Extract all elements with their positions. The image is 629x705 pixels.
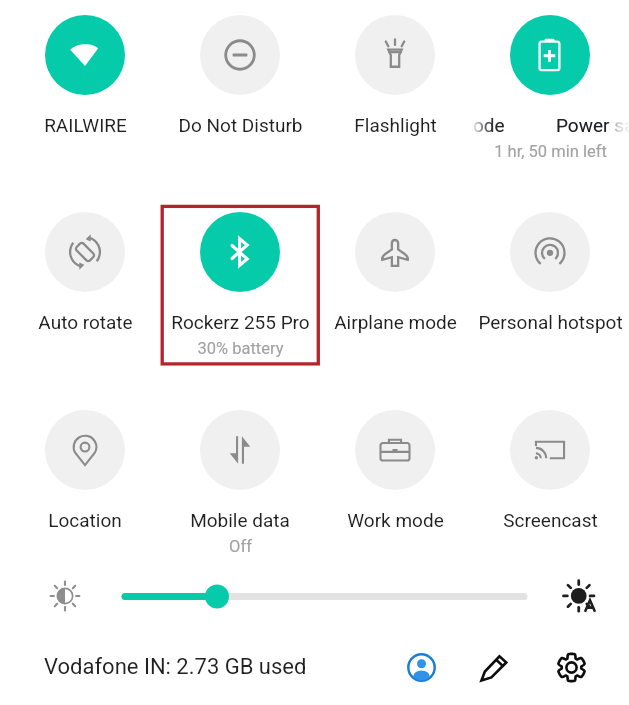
button[interactable] — [200, 410, 280, 490]
button[interactable]: Brightness — [44, 575, 86, 617]
staticText: Rockerz 255 Pro — [171, 311, 310, 333]
button[interactable] — [510, 410, 590, 490]
staticText: Work mode — [347, 509, 444, 531]
button[interactable] — [200, 212, 280, 292]
button[interactable] — [45, 212, 125, 292]
button[interactable]: Settings — [551, 647, 591, 687]
button[interactable]: Brightness level — [119, 583, 531, 611]
button[interactable] — [355, 15, 435, 95]
button[interactable] — [510, 15, 590, 95]
staticText: Screencast — [503, 509, 598, 531]
staticText: Airplane mode — [334, 311, 457, 333]
staticText: ode — [473, 114, 505, 136]
button[interactable]: Vodafone IN: 2.73 GB used — [44, 648, 307, 686]
staticText: 1 hr, 50 min left — [494, 142, 607, 161]
staticText: Off — [229, 537, 252, 556]
staticText: Do Not Disturb — [178, 114, 303, 136]
staticText: Personal hotspot — [478, 311, 623, 333]
staticText: RAILWIRE — [44, 114, 127, 136]
button[interactable] — [200, 15, 280, 95]
button[interactable] — [355, 410, 435, 490]
staticText: 30% battery — [197, 339, 284, 358]
staticText: Flashlight — [354, 114, 437, 136]
button[interactable]: Edit — [474, 647, 514, 687]
staticText: Vodafone IN: 2.73 GB used — [44, 654, 307, 680]
staticText: Power saver — [556, 114, 629, 136]
staticText: Auto rotate — [38, 311, 133, 333]
staticText: Location — [48, 509, 122, 531]
button[interactable]: Auto brightness — [557, 575, 599, 617]
button[interactable]: Account — [401, 647, 441, 687]
button[interactable] — [510, 212, 590, 292]
staticText: Mobile data — [190, 509, 290, 531]
button[interactable] — [45, 15, 125, 95]
button[interactable] — [355, 212, 435, 292]
button[interactable] — [45, 410, 125, 490]
